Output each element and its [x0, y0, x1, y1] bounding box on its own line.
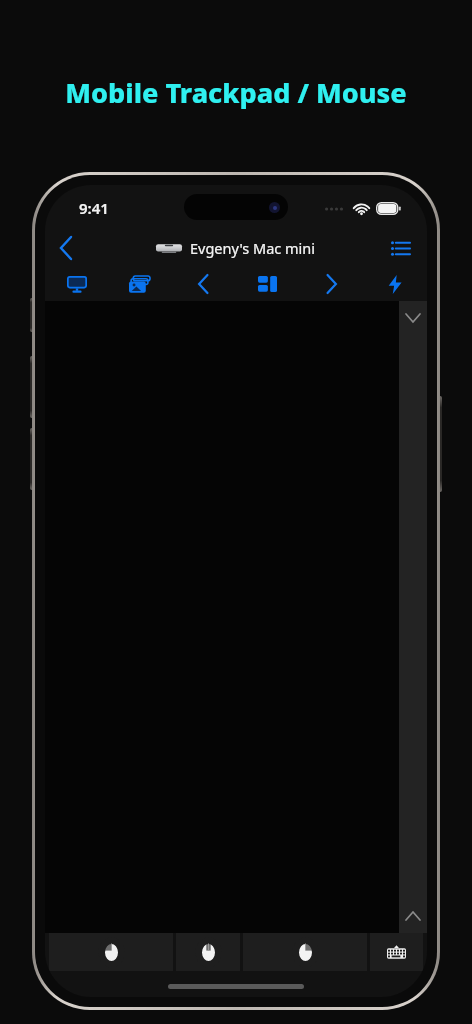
button[interactable]: Layout	[235, 267, 299, 301]
button[interactable]: Display	[45, 267, 108, 301]
button[interactable]: Back	[45, 229, 87, 267]
button[interactable]: Power	[363, 267, 427, 301]
staticText: 9:41	[79, 198, 109, 218]
button[interactable]: Next	[299, 267, 363, 301]
button[interactable]: List	[381, 229, 419, 267]
button[interactable]: Middle click	[176, 933, 240, 971]
staticText: Evgeny's Mac mini	[190, 238, 316, 258]
staticText: Mobile Trackpad / Mouse	[65, 74, 407, 111]
button[interactable]: Right click	[243, 933, 367, 971]
button[interactable]: Left click	[49, 933, 173, 971]
button[interactable]: Photos	[108, 267, 171, 301]
button[interactable]: Scroll down	[399, 301, 427, 335]
button[interactable]: Keyboard	[370, 933, 423, 971]
button[interactable]: Scroll up	[399, 899, 427, 933]
button[interactable]: Previous	[171, 267, 235, 301]
